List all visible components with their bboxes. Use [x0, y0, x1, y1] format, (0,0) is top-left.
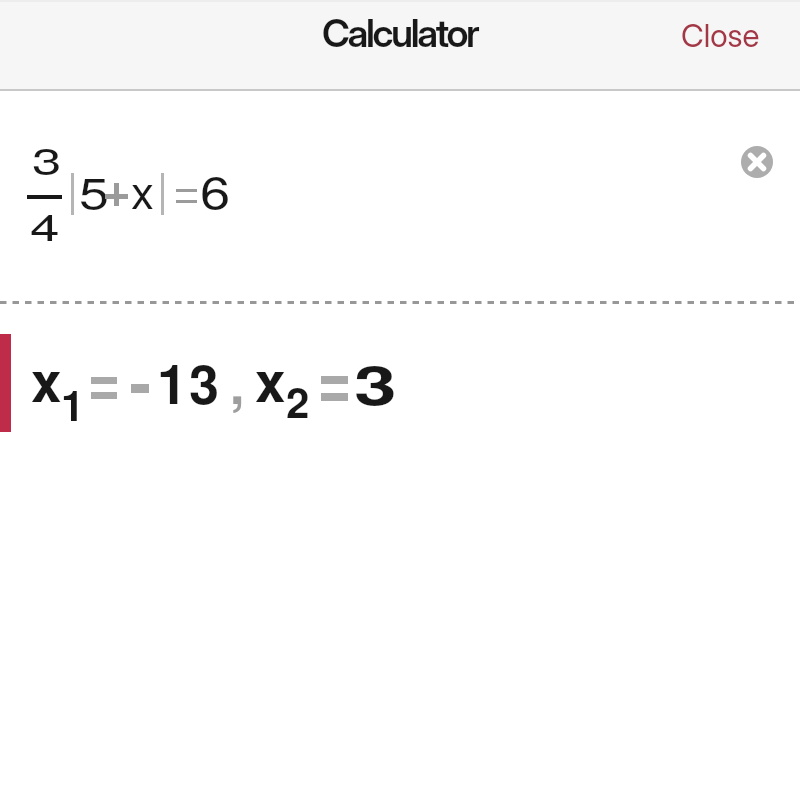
- staticText: 6: [200, 158, 230, 222]
- staticText: 2: [286, 371, 310, 431]
- staticText: x: [255, 340, 286, 419]
- staticText: Close: [681, 16, 760, 54]
- staticText: ,: [230, 345, 245, 419]
- staticText: 13: [157, 343, 222, 420]
- staticText: Calculator: [322, 10, 478, 57]
- staticText: 3: [354, 344, 398, 421]
- button[interactable]: Close: [655, 6, 785, 64]
- staticText: 3: [32, 131, 62, 186]
- button[interactable]: [737, 142, 777, 182]
- staticText: x: [31, 340, 62, 419]
- staticText: 1: [61, 374, 85, 434]
- button[interactable]: [0, 330, 800, 440]
- staticText: 4: [30, 197, 60, 252]
- staticText: 5: [79, 160, 109, 221]
- staticText: x: [131, 156, 154, 222]
